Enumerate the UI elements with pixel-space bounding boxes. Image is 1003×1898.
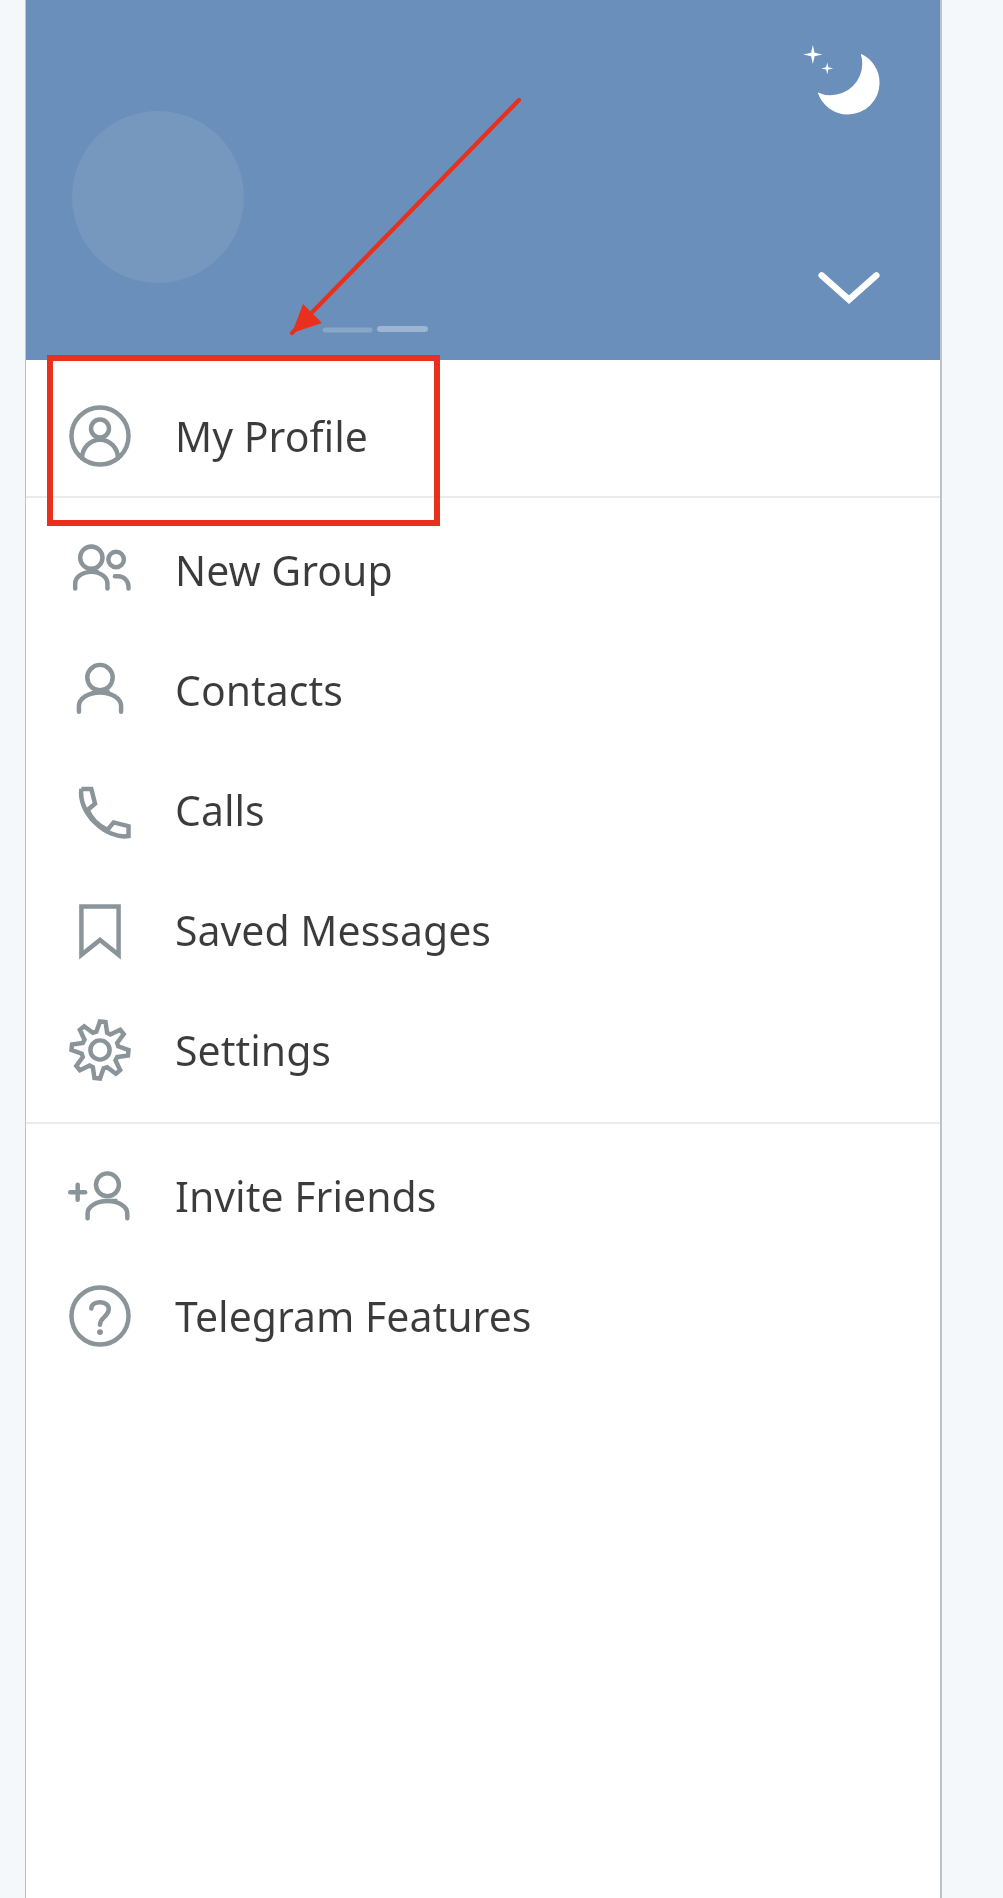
staticText: Calls [175,782,265,838]
button[interactable]: Contacts [25,630,941,750]
button[interactable]: Settings [25,990,941,1110]
button[interactable]: Saved Messages [25,870,941,990]
button[interactable]: Expand accounts [811,248,887,324]
staticText: Saved Messages [175,902,491,958]
button[interactable]: New Group [25,510,941,630]
staticText: Telegram Features [175,1288,532,1344]
button[interactable]: Calls [25,750,941,870]
staticText: Settings [175,1022,332,1078]
button[interactable]: My Profile [25,376,941,496]
button[interactable]: Telegram Features [25,1256,941,1376]
staticText: New Group [175,542,393,598]
staticText: Invite Friends [175,1168,437,1224]
staticText: Contacts [175,662,343,718]
button[interactable]: Toggle night mode [797,30,893,126]
button[interactable]: Invite Friends [25,1136,941,1256]
staticText: My Profile [175,408,368,464]
